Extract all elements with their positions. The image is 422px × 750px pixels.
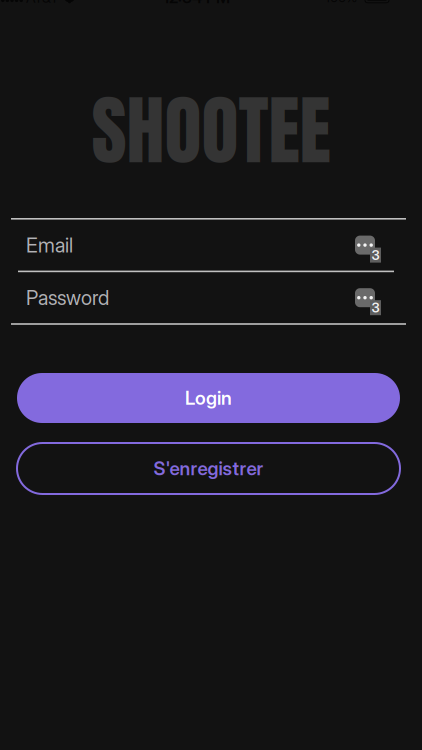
staticText: 12:34 PM xyxy=(163,0,230,7)
staticText: Login xyxy=(185,387,232,409)
staticText: Email xyxy=(26,233,73,257)
staticText: 100% xyxy=(325,0,357,5)
button[interactable]: Password xyxy=(0,272,355,323)
staticText: Password xyxy=(26,286,109,310)
staticText: S'enregistrer xyxy=(153,457,263,480)
button[interactable]: S'enregistrer xyxy=(17,443,400,494)
button[interactable]: Email xyxy=(0,220,355,271)
staticText: 3 xyxy=(371,300,379,316)
staticText: 3 xyxy=(371,247,379,263)
button[interactable]: Login xyxy=(17,373,400,423)
staticText: SHOOTEE xyxy=(91,73,330,187)
staticText: AT&T xyxy=(26,0,59,6)
